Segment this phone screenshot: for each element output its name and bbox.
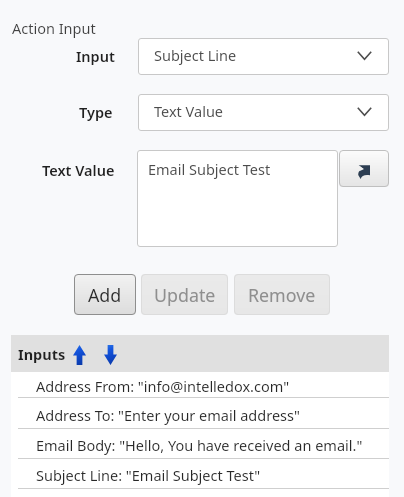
- button[interactable]: Subject Line: "Email Subject Test": [11, 459, 389, 489]
- staticText: Address From: "info@intelledox.com": [36, 376, 290, 396]
- button[interactable]: Address From: "info@intelledox.com": [11, 372, 389, 398]
- staticText: Text Value: [154, 101, 224, 121]
- staticText: Remove: [248, 283, 316, 307]
- staticText: Inputs: [18, 344, 66, 364]
- staticText: Type: [79, 102, 113, 122]
- staticText: Subject Line: [154, 45, 237, 65]
- staticText: Subject Line: "Email Subject Test": [36, 465, 261, 485]
- button[interactable]: Move up: [69, 344, 89, 364]
- staticText: Action Input: [12, 18, 96, 38]
- button[interactable]: Text Value: [138, 94, 389, 131]
- button[interactable]: Expand text value: [339, 150, 389, 187]
- button[interactable]: Subject Line: [138, 38, 389, 75]
- staticText: Email Body: "Hello, You have received an…: [36, 435, 363, 455]
- button[interactable]: Email Body: "Hello, You have received an…: [11, 429, 389, 459]
- staticText: Update: [154, 283, 216, 307]
- staticText: Email Subject Test: [148, 159, 271, 179]
- button[interactable]: Email Subject Test: [137, 150, 338, 247]
- staticText: Add: [88, 283, 122, 307]
- staticText: Text Value: [42, 160, 115, 180]
- button[interactable]: Remove: [234, 274, 330, 315]
- button[interactable]: Address To: "Enter your email address": [11, 398, 389, 429]
- staticText: Input: [76, 46, 115, 66]
- button[interactable]: Move down: [100, 344, 120, 364]
- staticText: Address To: "Enter your email address": [36, 405, 300, 425]
- button[interactable]: Update: [141, 274, 228, 315]
- button[interactable]: Add: [74, 274, 136, 315]
